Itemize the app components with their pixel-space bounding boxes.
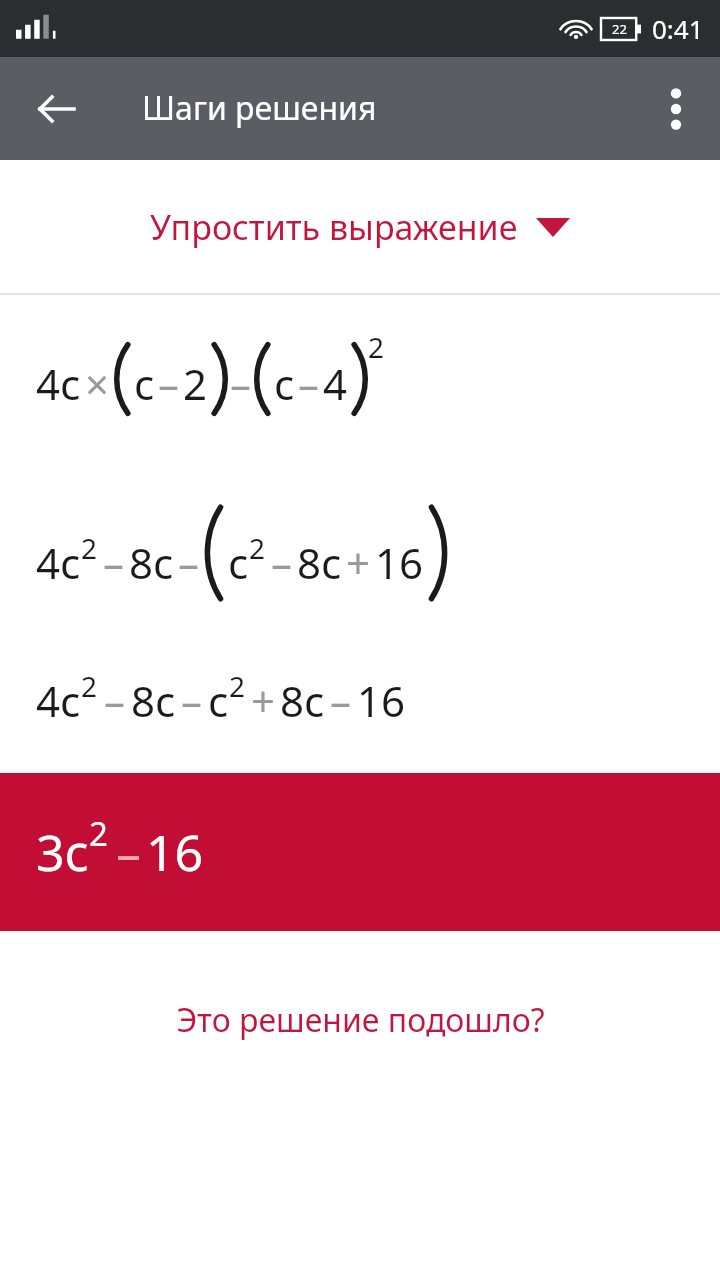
button[interactable]: Это решение подошло? — [0, 931, 720, 1109]
button[interactable]: More options — [644, 77, 708, 141]
button[interactable]: 4c — [0, 628, 720, 773]
staticText: 4c — [36, 672, 81, 729]
staticText: – — [271, 534, 293, 591]
staticText: – — [158, 355, 180, 412]
staticText: – — [330, 672, 352, 729]
staticText: – — [230, 355, 252, 412]
staticText: 4c — [36, 534, 81, 591]
staticText: × — [85, 355, 110, 412]
staticText: 16 — [146, 818, 204, 886]
staticText: 2 — [81, 529, 98, 567]
staticText: + — [251, 672, 276, 729]
staticText: c — [208, 672, 229, 729]
staticText: c — [228, 534, 249, 591]
staticText: 2 — [89, 811, 108, 856]
staticText: 8c — [297, 534, 342, 591]
staticText: 4c — [36, 355, 81, 412]
staticText: 22 — [612, 20, 627, 38]
staticText: c — [274, 355, 295, 412]
button[interactable]: Упростить выражение — [0, 160, 720, 293]
staticText: Шаги решения — [142, 86, 377, 130]
staticText: – — [298, 355, 320, 412]
staticText: 2 — [183, 355, 208, 412]
staticText: c — [134, 355, 155, 412]
button[interactable]: 4c — [0, 295, 720, 450]
staticText: 2 — [249, 529, 266, 567]
staticText: – — [116, 818, 141, 886]
staticText: 0:41 — [652, 11, 704, 46]
staticText: 3c — [36, 818, 89, 886]
staticText: – — [103, 534, 125, 591]
staticText: + — [346, 534, 371, 591]
staticText: 4 — [323, 355, 348, 412]
button[interactable]: 4c — [0, 450, 720, 628]
staticText: 2 — [368, 328, 385, 366]
staticText: 8c — [280, 672, 325, 729]
staticText: Упростить выражение — [150, 204, 518, 250]
staticText: 8c — [131, 672, 176, 729]
staticText: 16 — [375, 534, 424, 591]
button[interactable]: Back — [20, 73, 92, 145]
staticText: – — [104, 672, 126, 729]
staticText: 8c — [129, 534, 174, 591]
staticText: 16 — [357, 672, 406, 729]
staticText: – — [178, 534, 200, 591]
staticText: 2 — [229, 667, 246, 705]
staticText: – — [181, 672, 203, 729]
staticText: 2 — [81, 667, 98, 705]
staticText: Это решение подошло? — [176, 998, 545, 1042]
button[interactable]: 3c — [0, 773, 720, 931]
